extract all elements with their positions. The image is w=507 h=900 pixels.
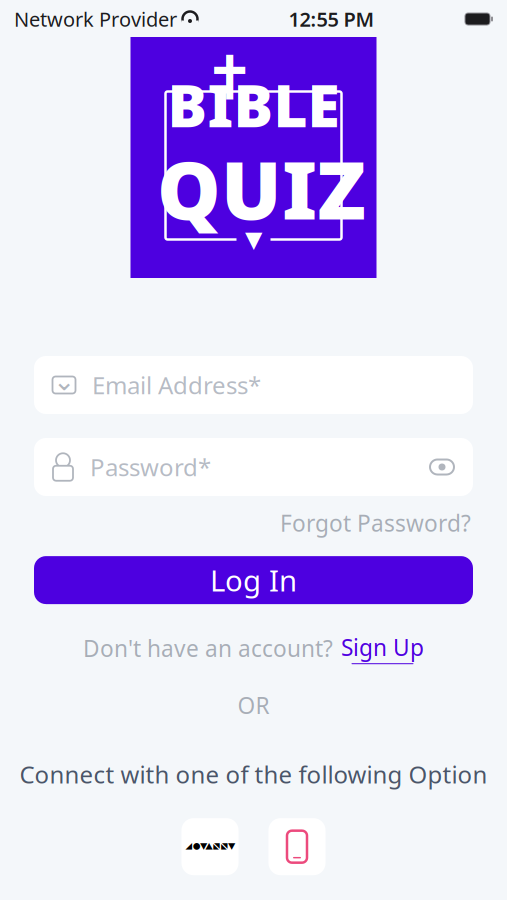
staticText: Sign Up	[341, 632, 424, 662]
staticText: ✝	[204, 44, 255, 113]
button[interactable]: Sign Up	[341, 632, 424, 664]
button[interactable]: Log In	[34, 556, 473, 604]
staticText: Forgot Password?	[280, 508, 471, 538]
staticText: Don't have an account?	[83, 633, 333, 663]
staticText: BIBLE	[167, 65, 339, 143]
staticText: Password*	[90, 451, 211, 483]
button[interactable]: Sign in with Apple	[181, 818, 238, 875]
staticText: ⌄	[53, 366, 75, 396]
staticText: ▼	[245, 227, 262, 252]
button[interactable]: Sign in with phone number	[268, 818, 325, 875]
button[interactable]: Password*	[34, 438, 473, 496]
staticText: Connect with one of the following Option	[19, 758, 487, 790]
staticText: 	[184, 822, 235, 871]
staticText: QUIZ	[157, 135, 366, 241]
staticText: Email Address*	[92, 369, 261, 401]
staticText: Network Provider	[14, 6, 177, 32]
staticText: OR	[237, 690, 269, 720]
button[interactable]: Forgot Password?	[280, 508, 471, 538]
staticText: 12:55 PM	[288, 6, 374, 32]
staticText: Log In	[210, 561, 297, 600]
button[interactable]: ⌄	[34, 356, 473, 414]
